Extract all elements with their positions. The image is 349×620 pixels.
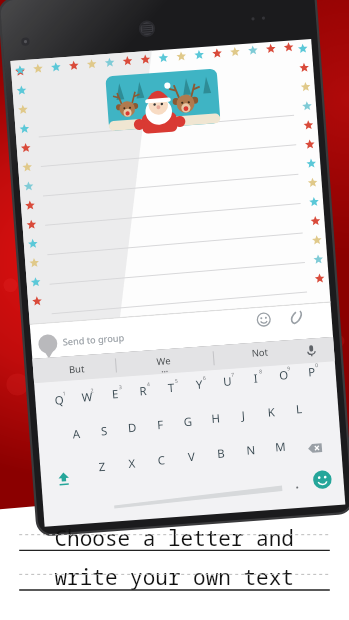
button[interactable] — [0, 0, 349, 620]
